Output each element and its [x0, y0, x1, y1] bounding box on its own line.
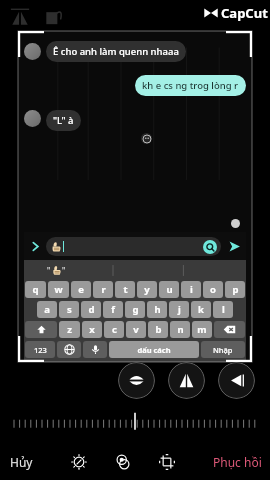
staticText: x [89, 323, 95, 336]
staticText: k [198, 303, 204, 316]
staticText: Hủy [10, 454, 33, 470]
button[interactable]: e [71, 281, 91, 298]
staticText: l [222, 303, 225, 316]
button[interactable]: "L" à [53, 114, 74, 127]
staticText: c [112, 323, 117, 336]
button[interactable]: Filters [110, 449, 136, 475]
staticText: n [177, 323, 184, 336]
staticText: w [54, 283, 63, 296]
staticText: CapCut [221, 4, 268, 22]
button[interactable]: p [225, 281, 245, 298]
button[interactable]: Phục hồi [213, 454, 262, 470]
button[interactable]: Search [203, 240, 217, 254]
button[interactable]: Adjust [66, 449, 92, 475]
staticText: "L" à [53, 114, 74, 127]
staticText: g [132, 303, 139, 316]
button[interactable]: x [82, 321, 102, 338]
button[interactable]: r [93, 281, 113, 298]
button[interactable]: t [115, 281, 135, 298]
button[interactable]: Nhập [201, 341, 245, 358]
staticText: a [44, 303, 50, 316]
button[interactable]: l [213, 301, 233, 318]
staticText: q [32, 283, 39, 296]
staticText: 123 [34, 345, 47, 355]
staticText: Ê cho anh làm quenn nhaaa [53, 45, 179, 58]
button[interactable]: a [37, 301, 57, 318]
staticText: j [178, 303, 181, 316]
button[interactable]: " [47, 265, 66, 276]
staticText: p [232, 283, 239, 296]
button[interactable]: o [203, 281, 223, 298]
staticText: i [190, 283, 193, 296]
button[interactable]: Ê cho anh làm quenn nhaaa [53, 45, 179, 58]
button[interactable]: dấu cách [109, 341, 199, 358]
button[interactable]: kh e cs ng trog lòng r [142, 79, 239, 92]
button[interactable] [0, 404, 270, 438]
staticText: z [67, 323, 72, 336]
button[interactable]: z [59, 321, 80, 338]
staticText: Nhập [213, 345, 233, 355]
button[interactable] [24, 43, 41, 60]
button[interactable]: h [147, 301, 167, 318]
button[interactable]: Hủy [10, 454, 33, 470]
button[interactable]: u [159, 281, 179, 298]
button[interactable]: y [137, 281, 157, 298]
button[interactable]: Expand [26, 237, 44, 255]
button[interactable]: Language [57, 341, 81, 358]
button[interactable]: v [126, 321, 146, 338]
staticText: o [210, 283, 216, 296]
button[interactable]: Mirror [218, 362, 255, 399]
button[interactable]: g [125, 301, 145, 318]
button[interactable]: j [169, 301, 189, 318]
button[interactable]: b [148, 321, 168, 338]
staticText: dấu cách [137, 345, 171, 355]
button[interactable]: 123 [25, 341, 55, 358]
button[interactable]: Voice input [83, 341, 107, 358]
button[interactable]: Flip horizontal [118, 362, 155, 399]
staticText: v [133, 323, 139, 336]
staticText: u [166, 283, 173, 296]
staticText: m [197, 323, 207, 336]
button[interactable]: Crop [154, 449, 180, 475]
staticText: r [101, 283, 106, 296]
button[interactable]: s [59, 301, 79, 318]
button[interactable]: n [170, 321, 190, 338]
button[interactable]: f [103, 301, 123, 318]
button[interactable]: c [104, 321, 124, 338]
button[interactable]: d [81, 301, 101, 318]
staticText: kh e cs ng trog lòng r [142, 79, 239, 92]
button[interactable] [24, 110, 41, 127]
staticText: f [111, 303, 115, 316]
button[interactable]: Rotate [42, 4, 66, 28]
button[interactable]: Flip vertical [168, 362, 205, 399]
button[interactable]: i [181, 281, 201, 298]
button[interactable]: k [191, 301, 211, 318]
button[interactable]: Send [224, 236, 244, 256]
staticText: " [62, 265, 66, 276]
staticText: b [155, 323, 162, 336]
staticText: t [123, 283, 128, 296]
button[interactable]: Mirror [8, 4, 32, 28]
staticText: h [154, 303, 161, 316]
staticText: " [47, 265, 51, 276]
button[interactable]: q [25, 281, 46, 298]
staticText: d [88, 303, 95, 316]
staticText: e [78, 283, 84, 296]
button[interactable]: w [48, 281, 69, 298]
staticText: y [144, 283, 150, 296]
staticText: s [67, 303, 72, 316]
button[interactable]: Backspace [214, 321, 245, 338]
button[interactable]: Search [50, 237, 217, 256]
button[interactable]: m [192, 321, 212, 338]
button[interactable]: Shift [25, 321, 57, 338]
staticText: Phục hồi [213, 454, 262, 470]
